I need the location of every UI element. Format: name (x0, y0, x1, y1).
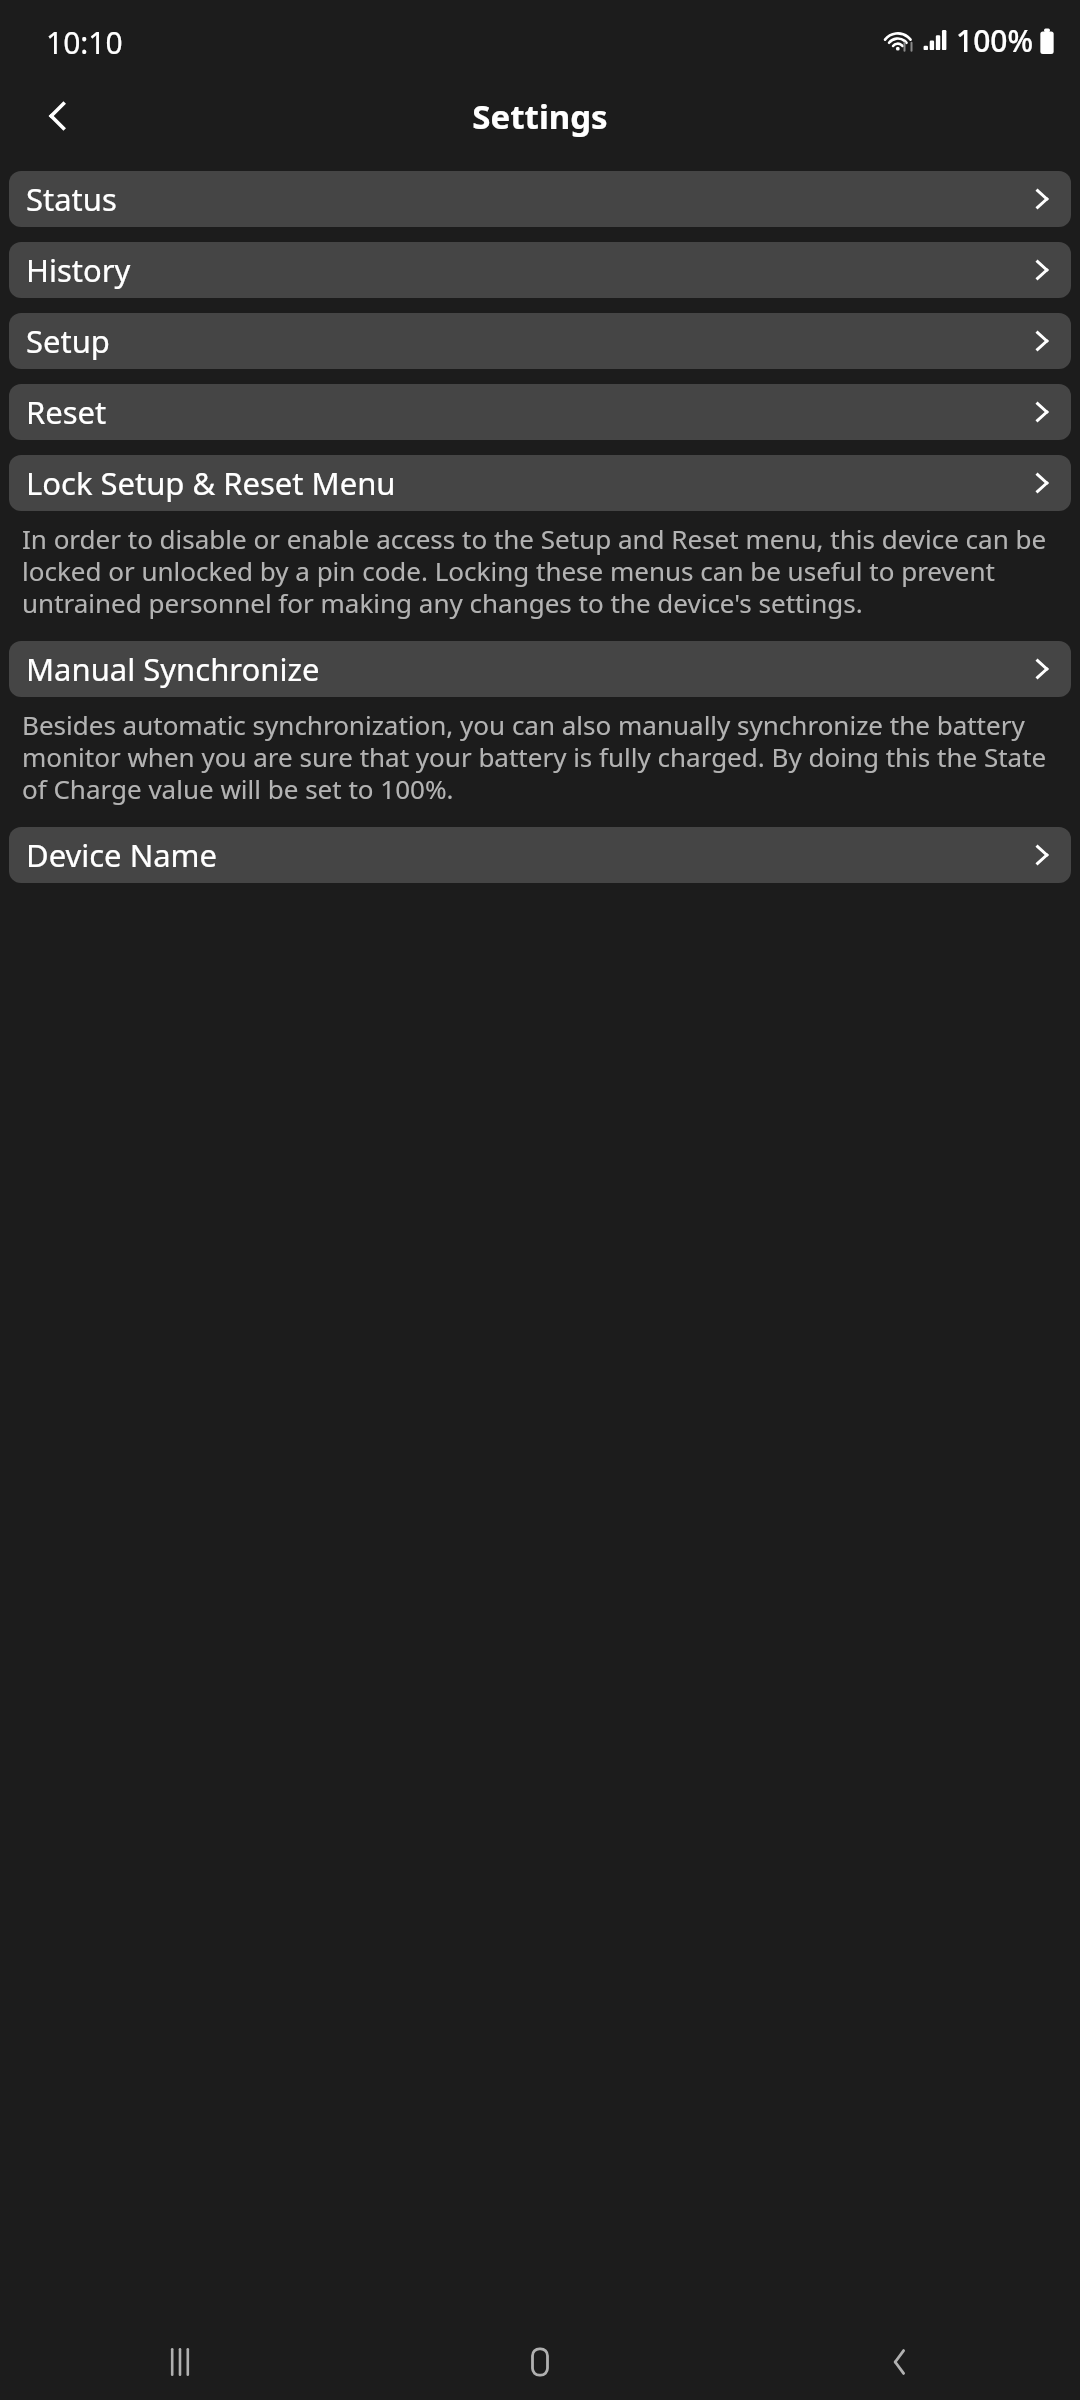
staticText: History (26, 249, 131, 291)
staticText: Lock Setup & Reset Menu (26, 462, 396, 504)
staticText: Status (26, 178, 117, 220)
staticText: Besides automatic synchronization, you c… (22, 707, 1062, 807)
staticText: Manual Synchronize (26, 648, 320, 690)
button[interactable]: Setup (9, 313, 1071, 369)
button[interactable]: History (9, 242, 1071, 298)
button[interactable]: Device Name (9, 827, 1071, 883)
staticText: Settings (472, 94, 608, 139)
staticText: Device Name (26, 834, 218, 876)
button[interactable]: Back (18, 78, 98, 154)
button[interactable]: Manual Synchronize (9, 641, 1071, 697)
staticText: In order to disable or enable access to … (22, 521, 1062, 621)
button[interactable]: Back (720, 2324, 1080, 2400)
staticText: Setup (26, 320, 110, 362)
button[interactable]: Home (360, 2324, 720, 2400)
button[interactable]: Reset (9, 384, 1071, 440)
button[interactable]: Status (9, 171, 1071, 227)
staticText: Reset (26, 391, 107, 433)
button[interactable]: Lock Setup & Reset Menu (9, 455, 1071, 511)
staticText: 100% (956, 20, 1034, 61)
staticText: 10:10 (46, 22, 123, 63)
button[interactable]: Recent apps (0, 2324, 360, 2400)
